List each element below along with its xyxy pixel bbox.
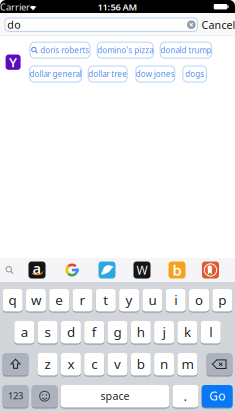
button[interactable]: [63, 261, 80, 278]
button[interactable]: j: [154, 320, 174, 344]
button[interactable]: g: [107, 320, 127, 344]
staticText: doris roberts: [40, 45, 89, 55]
staticText: e: [55, 291, 63, 309]
staticText: domino's pizza: [97, 45, 153, 55]
staticText: z: [45, 355, 51, 373]
staticText: 11:56 AM: [97, 1, 137, 13]
button[interactable]: a: [14, 320, 34, 344]
button[interactable]: q: [3, 288, 23, 312]
button[interactable]: dogs: [182, 65, 207, 82]
button[interactable]: [3, 352, 28, 376]
staticText: k: [184, 323, 191, 341]
button[interactable]: domino's pizza: [97, 42, 154, 59]
staticText: a: [32, 258, 41, 278]
button[interactable]: .: [173, 384, 198, 408]
button[interactable]: n: [154, 352, 174, 376]
button[interactable]: t: [96, 288, 116, 312]
button[interactable]: doris roberts: [29, 42, 90, 59]
staticText: v: [114, 355, 121, 373]
staticText: x: [67, 355, 74, 373]
staticText: space: [100, 389, 129, 403]
button[interactable]: h: [131, 320, 151, 344]
button[interactable]: w: [26, 288, 46, 312]
button[interactable]: dollar general: [29, 65, 82, 82]
staticText: p: [218, 291, 226, 309]
button[interactable]: u: [142, 288, 162, 312]
staticText: t: [103, 291, 108, 309]
staticText: Go: [209, 388, 225, 404]
staticText: Carrier: [0, 1, 30, 13]
button[interactable]: v: [107, 352, 127, 376]
staticText: s: [45, 323, 51, 341]
button[interactable]: [32, 384, 57, 408]
staticText: a: [21, 323, 28, 341]
button[interactable]: m: [177, 352, 197, 376]
staticText: j: [163, 323, 166, 341]
staticText: donald trump: [160, 45, 211, 55]
button[interactable]: [202, 261, 219, 278]
staticText: dogs: [185, 69, 204, 79]
button[interactable]: e: [49, 288, 69, 312]
staticText: m: [181, 355, 193, 373]
staticText: dollar tree: [88, 69, 127, 79]
button[interactable]: k: [177, 320, 197, 344]
button[interactable]: b: [131, 352, 151, 376]
staticText: Y: [9, 53, 17, 71]
button[interactable]: space: [61, 384, 169, 408]
button[interactable]: b: [168, 261, 185, 278]
staticText: c: [91, 355, 97, 373]
staticText: dow jones: [136, 69, 175, 79]
staticText: h: [137, 323, 145, 341]
button[interactable]: Go: [202, 384, 233, 408]
button[interactable]: [207, 352, 232, 376]
staticText: i: [174, 291, 177, 309]
button[interactable]: [187, 20, 196, 29]
button[interactable]: i: [166, 288, 186, 312]
button[interactable]: W: [133, 261, 150, 278]
button[interactable]: r: [72, 288, 92, 312]
staticText: u: [148, 291, 156, 309]
button[interactable]: a: [28, 261, 45, 278]
staticText: b: [137, 355, 145, 373]
staticText: n: [160, 355, 168, 373]
button[interactable]: l: [201, 320, 221, 344]
staticText: b: [172, 260, 181, 280]
staticText: f: [92, 323, 97, 341]
staticText: o: [195, 291, 203, 309]
button[interactable]: Cancel: [201, 18, 235, 32]
staticText: q: [9, 291, 17, 309]
button[interactable]: f: [84, 320, 104, 344]
staticText: dollar general: [29, 69, 81, 79]
staticText: w: [31, 291, 41, 309]
button[interactable]: [98, 261, 115, 278]
button[interactable]: s: [38, 320, 58, 344]
button[interactable]: z: [38, 352, 58, 376]
button[interactable]: y: [119, 288, 139, 312]
button[interactable]: Y: [6, 55, 21, 70]
button[interactable]: [4, 17, 198, 32]
button[interactable]: c: [84, 352, 104, 376]
staticText: g: [113, 323, 121, 341]
staticText: .: [183, 387, 187, 405]
button[interactable]: d: [61, 320, 81, 344]
button[interactable]: 123: [3, 384, 28, 408]
button[interactable]: dollar tree: [88, 65, 128, 82]
button[interactable]: p: [212, 288, 232, 312]
staticText: W: [136, 262, 147, 278]
button[interactable]: dow jones: [135, 65, 175, 82]
button[interactable]: donald trump: [160, 42, 212, 59]
staticText: l: [209, 323, 212, 341]
button[interactable]: x: [61, 352, 81, 376]
staticText: y: [126, 291, 133, 309]
button[interactable]: o: [189, 288, 209, 312]
staticText: r: [79, 291, 85, 309]
staticText: 123: [8, 390, 23, 402]
staticText: Cancel: [201, 18, 235, 32]
staticText: d: [67, 323, 75, 341]
staticText: do: [7, 17, 20, 32]
